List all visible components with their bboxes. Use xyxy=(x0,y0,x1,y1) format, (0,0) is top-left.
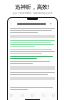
button[interactable]: Back xyxy=(10,23,12,25)
staticText: 迅神听，高效! xyxy=(15,3,49,10)
button[interactable]: More options xyxy=(53,23,55,25)
button[interactable]: Record xyxy=(21,94,24,97)
staticText: 会议了解还需要听 随时随地轻松记录 xyxy=(12,11,53,14)
button[interactable]: Export xyxy=(52,94,55,97)
button[interactable]: Translate xyxy=(42,94,45,97)
button[interactable]: Edit xyxy=(10,94,13,97)
button[interactable]: Share xyxy=(50,23,52,25)
button[interactable]: Play xyxy=(31,94,34,97)
